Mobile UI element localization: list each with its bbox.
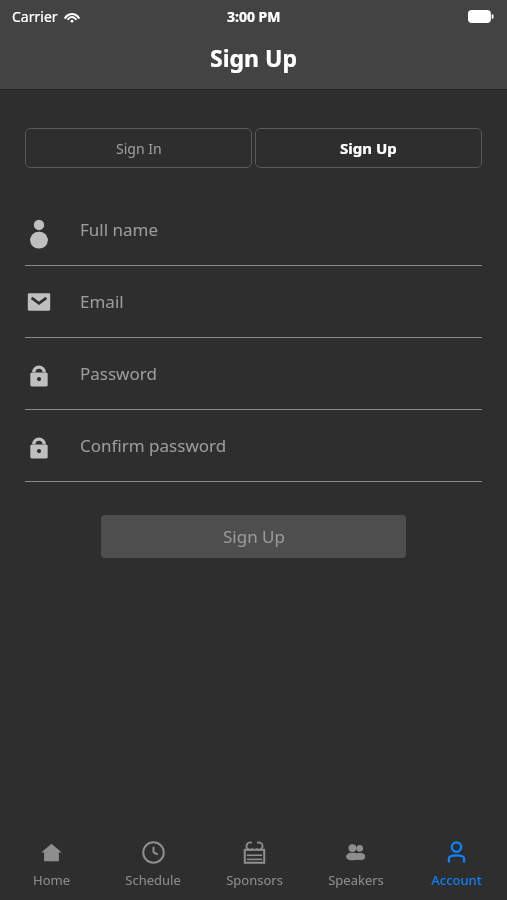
- staticText: Sign Up: [340, 138, 397, 158]
- staticText: Password: [80, 362, 157, 385]
- staticText: Schedule: [125, 871, 181, 889]
- staticText: Sign Up: [210, 42, 297, 73]
- button[interactable]: Account: [406, 828, 507, 900]
- staticText: Full name: [80, 218, 159, 241]
- staticText: Confirm password: [80, 434, 227, 457]
- button[interactable]: Speakers: [305, 828, 406, 900]
- staticText: 3:00 PM: [227, 7, 281, 26]
- staticText: Speakers: [328, 871, 384, 889]
- button[interactable]: Full name: [25, 194, 482, 265]
- staticText: Sponsors: [226, 871, 283, 889]
- staticText: Account: [431, 871, 482, 889]
- staticText: Email: [80, 290, 124, 313]
- button[interactable]: Sponsors: [204, 828, 305, 900]
- button[interactable]: Sign Up: [255, 128, 482, 168]
- staticText: Sign Up: [223, 525, 285, 548]
- button[interactable]: Email: [25, 266, 482, 337]
- button[interactable]: Password: [25, 338, 482, 409]
- button[interactable]: Sign Up: [101, 515, 406, 558]
- button[interactable]: Confirm password: [25, 410, 482, 481]
- staticText: Carrier: [12, 7, 58, 26]
- button[interactable]: Home: [0, 828, 102, 900]
- staticText: Sign In: [116, 139, 162, 158]
- button[interactable]: Schedule: [102, 828, 204, 900]
- button[interactable]: Sign In: [25, 128, 252, 168]
- staticText: Home: [33, 871, 70, 889]
